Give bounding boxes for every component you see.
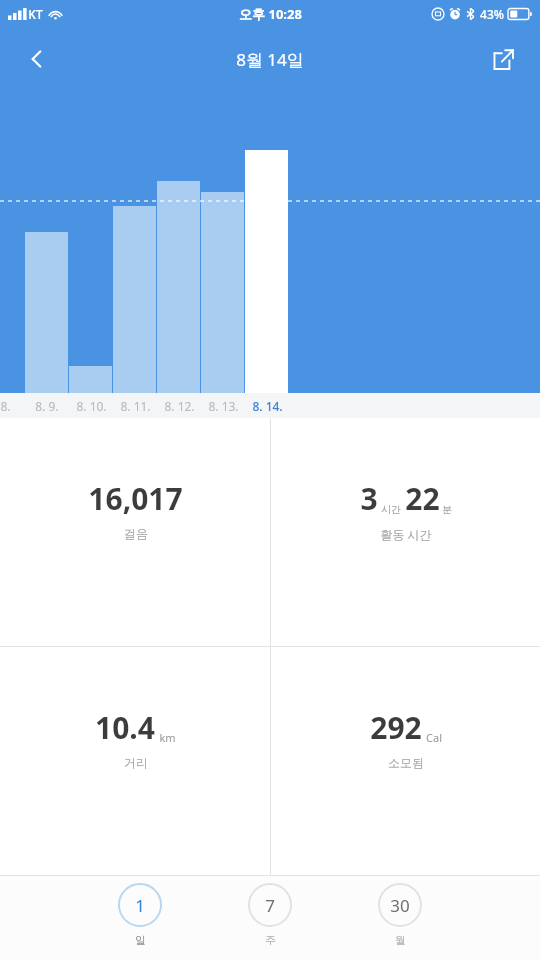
staticText: 월 xyxy=(395,933,406,947)
button[interactable]: Back xyxy=(14,36,60,82)
staticText: 8. 10. xyxy=(76,398,107,414)
staticText: 7 xyxy=(265,894,275,917)
staticText: 8월 14일 xyxy=(236,48,304,71)
staticText: 8. 13. xyxy=(208,398,239,414)
staticText: 활동 시간 xyxy=(380,526,432,542)
button[interactable]: 7 xyxy=(235,881,305,949)
button[interactable]: 30 xyxy=(365,881,435,949)
staticText: 292 xyxy=(370,707,422,748)
staticText: 10.4 xyxy=(95,707,155,748)
staticText: 30 xyxy=(390,894,410,917)
button[interactable]: 1 xyxy=(105,881,175,949)
staticText: 시간 xyxy=(381,503,401,516)
staticText: 오후 10:28 xyxy=(239,5,302,23)
staticText: 43% xyxy=(480,6,504,22)
staticText: 8. 9. xyxy=(35,398,59,414)
staticText: 16,017 xyxy=(88,478,183,519)
staticText: 거리 xyxy=(124,755,148,770)
staticText: 8. 12. xyxy=(164,398,195,414)
staticText: 소모됨 xyxy=(388,755,424,770)
staticText: 주 xyxy=(265,933,276,947)
staticText: 8. xyxy=(0,398,11,414)
button[interactable]: 10.4 xyxy=(0,647,270,875)
staticText: 걸음 xyxy=(124,526,148,541)
staticText: KT xyxy=(28,6,43,22)
button[interactable]: 292 xyxy=(271,647,540,875)
staticText: 분 xyxy=(442,503,452,516)
button[interactable]: 16,017 xyxy=(0,418,270,646)
staticText: 3 xyxy=(360,478,378,519)
staticText: 일 xyxy=(135,933,146,947)
button[interactable]: Share xyxy=(480,36,526,82)
button[interactable]: 3 xyxy=(271,418,540,646)
staticText: Cal xyxy=(426,730,442,745)
staticText: 8. 11. xyxy=(120,398,151,414)
staticText: 8. 14. xyxy=(252,398,283,414)
staticText: 1 xyxy=(135,894,145,917)
staticText: 22 xyxy=(405,478,440,519)
staticText: km xyxy=(159,730,176,745)
